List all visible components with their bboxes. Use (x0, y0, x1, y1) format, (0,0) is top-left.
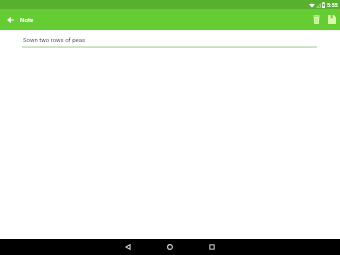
button[interactable]: Delete (307, 9, 326, 30)
button[interactable]: Navigate up (1, 9, 20, 30)
button[interactable]: Recent apps (203, 239, 221, 255)
button[interactable]: Save (322, 9, 340, 30)
button[interactable]: Home (161, 239, 179, 255)
button[interactable]: Back (119, 239, 137, 255)
staticText: Sown two rows of peas (23, 36, 86, 43)
staticText: 5:55 (327, 2, 338, 8)
staticText: Note (20, 16, 34, 23)
